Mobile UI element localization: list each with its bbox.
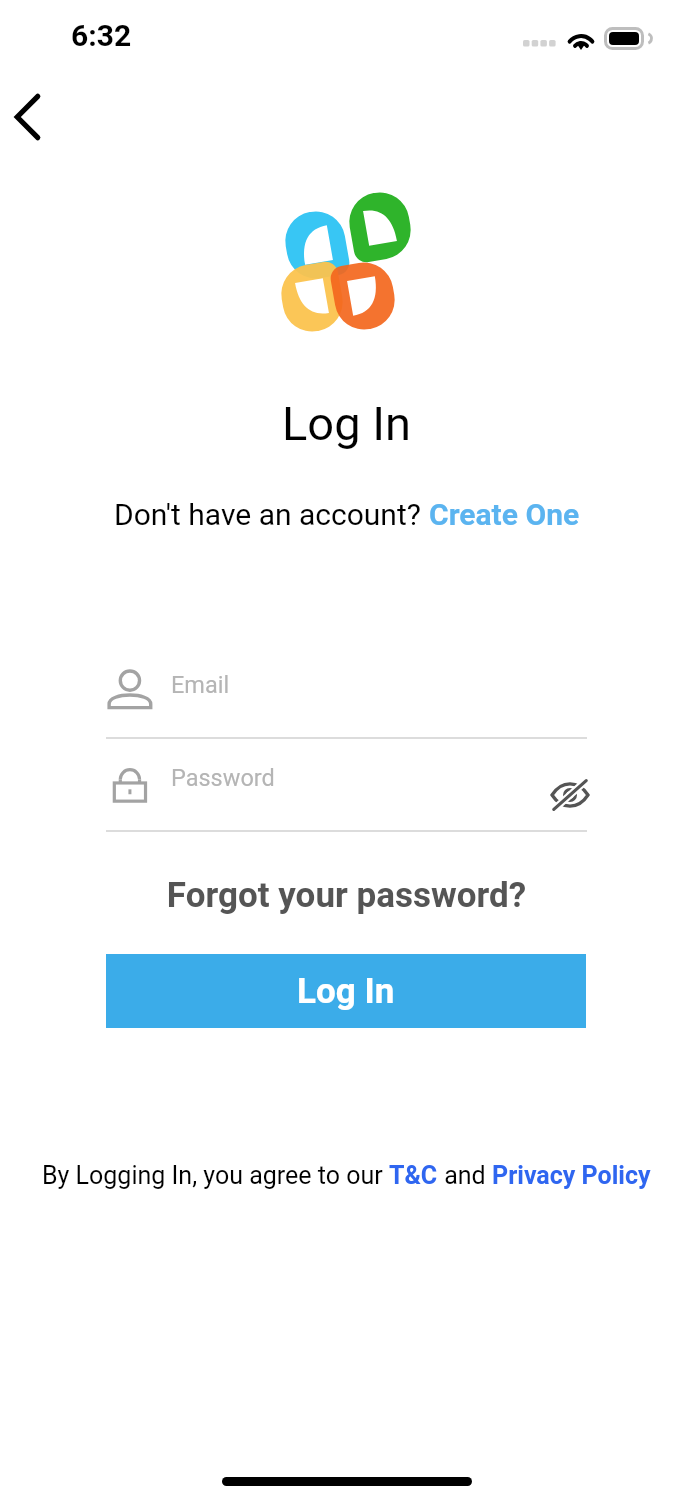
staticText: 6:32	[71, 18, 132, 53]
button[interactable]: Show password	[544, 769, 596, 821]
staticText: Password	[171, 764, 535, 792]
button[interactable]: Create One	[429, 497, 580, 532]
staticText: and	[438, 1161, 492, 1190]
button[interactable]: Privacy Policy	[492, 1161, 651, 1190]
staticText: By Logging In, you agree to our	[42, 1161, 389, 1190]
staticText: Log In	[297, 971, 395, 1012]
staticText: Don't have an account?	[114, 497, 429, 532]
staticText: Email	[171, 671, 587, 699]
button[interactable]: Forgot your password?	[0, 875, 693, 916]
button[interactable]: Log In	[106, 954, 586, 1028]
button[interactable]: Back	[0, 80, 72, 152]
staticText: Log In	[0, 396, 693, 451]
button[interactable]: T&C	[389, 1161, 438, 1190]
